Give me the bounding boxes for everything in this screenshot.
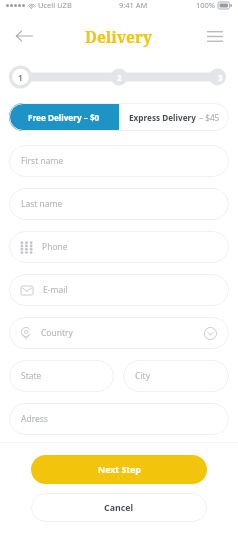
staticText: 1 [18, 72, 23, 83]
button[interactable]: City [123, 360, 229, 392]
button[interactable]: State [9, 360, 114, 392]
button[interactable]: Phone [9, 231, 229, 263]
button[interactable]: E-mail [9, 274, 229, 306]
staticText: 100% [196, 0, 216, 10]
button[interactable]: Menu [200, 21, 230, 51]
staticText: Country [41, 327, 73, 339]
staticText: Phone [42, 241, 68, 253]
staticText: – $45 [199, 112, 220, 123]
button[interactable]: 1 [9, 66, 32, 89]
staticText: First name [21, 155, 64, 167]
button[interactable]: 2 [111, 69, 128, 86]
staticText: City [135, 370, 150, 382]
staticText: Adress [21, 413, 48, 425]
staticText: Free Delivery – $0 [28, 112, 100, 123]
staticText: State [21, 370, 42, 382]
staticText: 3 [218, 72, 223, 83]
staticText: Cancel [104, 502, 134, 514]
button[interactable]: 3 [212, 69, 229, 86]
staticText: 9:41 AM [119, 0, 148, 10]
staticText: Delivery [85, 26, 153, 47]
staticText: Ucell UZB [38, 0, 72, 10]
button[interactable]: Back [8, 20, 40, 52]
button[interactable]: Adress [9, 403, 229, 435]
staticText: Next Step [98, 464, 141, 476]
button[interactable]: Next Step [31, 455, 207, 484]
staticText: 2 [117, 72, 122, 83]
button[interactable]: Country [9, 317, 229, 349]
button[interactable]: First name [9, 145, 229, 177]
staticText: E-mail [43, 284, 68, 296]
button[interactable]: Select country [204, 327, 217, 340]
button[interactable]: Last name [9, 188, 229, 220]
button[interactable]: Cancel [31, 493, 207, 522]
button[interactable]: Express Delivery [119, 103, 229, 131]
button[interactable]: Free Delivery – $0 [9, 103, 119, 131]
staticText: Express Delivery [129, 112, 199, 123]
staticText: Last name [21, 198, 63, 210]
